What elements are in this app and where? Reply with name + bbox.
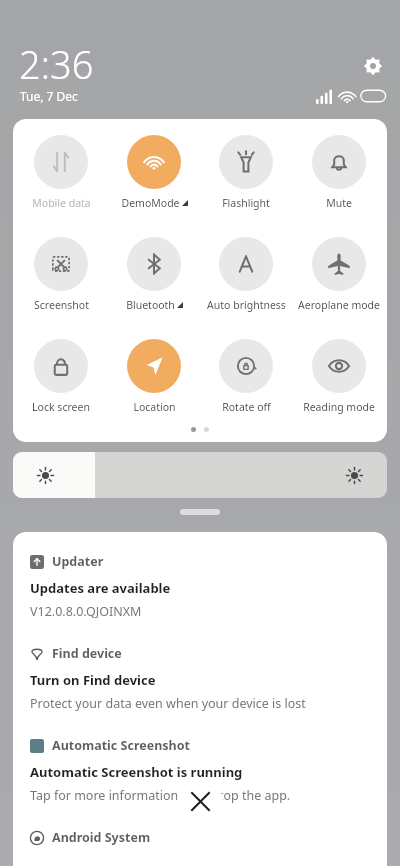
staticText: Turn on Find device bbox=[30, 671, 156, 689]
staticText: Flashlight bbox=[222, 196, 270, 210]
staticText: Aeroplane mode bbox=[298, 298, 380, 312]
button[interactable]: Close notifications bbox=[177, 778, 223, 824]
button[interactable]: Auto brightness bbox=[202, 237, 290, 312]
staticText: Mobile data bbox=[32, 196, 91, 210]
button[interactable]: DemoMode bbox=[110, 135, 198, 210]
button[interactable]: Updater bbox=[30, 553, 370, 620]
button[interactable]: Android System bbox=[30, 829, 370, 846]
staticText: 2:36 bbox=[19, 38, 94, 90]
button[interactable]: Reading mode bbox=[295, 339, 383, 414]
button[interactable]: Settings bbox=[358, 51, 388, 81]
staticText: Tue, 7 Dec bbox=[20, 88, 78, 104]
button[interactable]: Flashlight bbox=[202, 135, 290, 210]
staticText: Lock screen bbox=[32, 400, 90, 414]
staticText: Screenshot bbox=[34, 298, 89, 312]
staticText: V12.0.8.0.QJOINXM bbox=[30, 603, 142, 620]
button[interactable]: Bluetooth bbox=[110, 237, 198, 312]
staticText: Find device bbox=[52, 645, 122, 662]
staticText: Location bbox=[133, 400, 176, 414]
staticText: Automatic Screenshot bbox=[52, 737, 190, 754]
button[interactable]: Location bbox=[110, 339, 198, 414]
staticText: Rotate off bbox=[222, 400, 271, 414]
button[interactable]: Mute bbox=[295, 135, 383, 210]
button[interactable]: Rotate off bbox=[202, 339, 290, 414]
staticText: Reading mode bbox=[303, 400, 375, 414]
staticText: Bluetooth bbox=[126, 298, 175, 312]
staticText: Tap for more information or to stop the … bbox=[30, 787, 291, 804]
staticText: Updater bbox=[52, 553, 104, 570]
staticText: Updates are available bbox=[30, 579, 171, 597]
staticText: Auto brightness bbox=[207, 298, 286, 312]
staticText: DemoMode bbox=[121, 196, 180, 210]
button[interactable]: Automatic Screenshot bbox=[30, 737, 370, 804]
button[interactable]: Find device bbox=[30, 645, 370, 712]
staticText: Android System bbox=[52, 829, 151, 846]
staticText: Mute bbox=[326, 196, 352, 210]
button[interactable]: Mobile data bbox=[17, 135, 105, 210]
button[interactable]: Screenshot bbox=[17, 237, 105, 312]
button[interactable]: Aeroplane mode bbox=[295, 237, 383, 312]
staticText: Automatic Screenshot is running bbox=[30, 763, 243, 781]
button[interactable]: Lock screen bbox=[17, 339, 105, 414]
staticText: Protect your data even when your device … bbox=[30, 695, 306, 712]
button[interactable] bbox=[13, 452, 387, 498]
